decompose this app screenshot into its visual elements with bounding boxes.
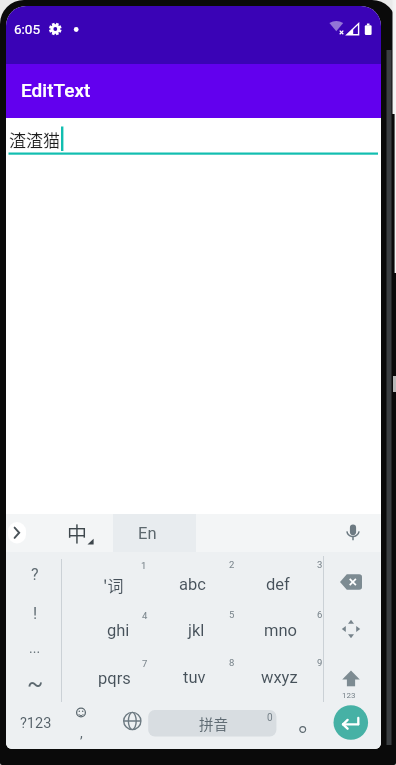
staticText: '词 <box>103 573 124 596</box>
staticText: ... <box>29 640 41 656</box>
staticText: def <box>266 575 290 594</box>
staticText: 5 <box>229 609 235 620</box>
button[interactable] <box>235 556 324 606</box>
button[interactable] <box>235 606 324 654</box>
button[interactable] <box>336 514 376 552</box>
staticText: abc <box>179 575 206 594</box>
staticText: 6 <box>317 609 323 620</box>
staticText: ghi <box>107 621 130 640</box>
staticText: 2 <box>229 559 235 570</box>
staticText: 7 <box>142 658 148 669</box>
button[interactable] <box>51 514 113 552</box>
staticText: , <box>80 725 83 741</box>
button[interactable] <box>324 606 381 654</box>
staticText: EditText <box>21 79 91 101</box>
button[interactable] <box>62 556 147 606</box>
button[interactable] <box>6 118 381 178</box>
staticText: 8 <box>229 657 235 668</box>
button[interactable] <box>147 701 236 749</box>
button[interactable] <box>6 519 30 547</box>
staticText: 123 <box>342 691 356 700</box>
staticText: 0 <box>267 712 273 724</box>
button[interactable] <box>324 654 381 701</box>
staticText: 中 <box>67 519 87 548</box>
button[interactable] <box>147 654 236 701</box>
button[interactable] <box>324 701 381 749</box>
staticText: 6:05 <box>14 21 41 37</box>
button[interactable] <box>6 654 62 701</box>
staticText: 渣渣猫 <box>9 127 60 152</box>
button[interactable] <box>147 556 236 606</box>
button[interactable] <box>6 606 62 654</box>
button[interactable] <box>62 654 147 701</box>
staticText: ~ <box>27 670 44 698</box>
staticText: 拼音 <box>199 713 228 734</box>
staticText: tuv <box>183 668 206 687</box>
staticText: 3 <box>317 559 323 570</box>
staticText: 1 <box>141 560 147 571</box>
staticText: jkl <box>188 621 205 640</box>
button[interactable] <box>62 701 147 749</box>
button[interactable] <box>6 701 62 749</box>
staticText: 9 <box>317 657 323 668</box>
staticText: ! <box>33 604 38 623</box>
staticText: wxyz <box>261 668 298 687</box>
button[interactable] <box>113 514 200 552</box>
staticText: En <box>138 524 157 543</box>
button[interactable] <box>62 606 147 654</box>
staticText: ? <box>31 565 39 584</box>
staticText: ?123 <box>20 715 52 732</box>
staticText: 4 <box>142 610 148 621</box>
staticText: pqrs <box>98 669 131 688</box>
button[interactable] <box>6 556 62 606</box>
button[interactable] <box>147 606 236 654</box>
staticText: mno <box>264 621 297 640</box>
button[interactable] <box>235 654 324 701</box>
button[interactable] <box>235 701 324 749</box>
button[interactable] <box>324 556 381 606</box>
